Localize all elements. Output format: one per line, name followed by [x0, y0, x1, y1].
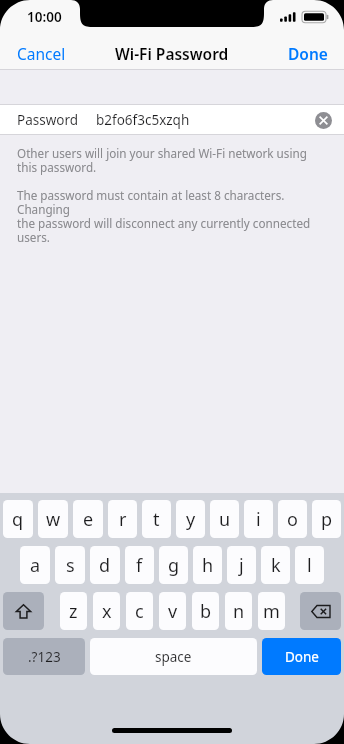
- staticText: e: [83, 507, 94, 532]
- staticText: c: [135, 599, 144, 624]
- staticText: j: [239, 553, 244, 578]
- staticText: space: [155, 648, 192, 666]
- staticText: Done: [285, 648, 319, 666]
- staticText: m: [263, 599, 280, 624]
- staticText: g: [168, 553, 180, 578]
- button[interactable]: Cancel: [0, 36, 78, 70]
- button[interactable]: a: [20, 546, 50, 584]
- button[interactable]: Backspace: [300, 592, 341, 630]
- button[interactable]: Done: [262, 638, 341, 675]
- button[interactable]: s: [55, 546, 85, 584]
- staticText: w: [46, 507, 61, 532]
- button[interactable]: u: [210, 500, 239, 538]
- button[interactable]: z: [60, 592, 87, 630]
- button[interactable]: c: [126, 592, 153, 630]
- staticText: u: [219, 507, 231, 532]
- staticText: p: [321, 507, 333, 532]
- staticText: Other users will join your shared Wi-Fi …: [17, 145, 307, 176]
- staticText: o: [287, 507, 298, 532]
- staticText: b: [200, 599, 212, 624]
- button[interactable]: d: [90, 546, 120, 584]
- button[interactable]: f: [125, 546, 154, 584]
- staticText: z: [69, 599, 78, 624]
- button[interactable]: y: [176, 500, 205, 538]
- staticText: 10:00: [27, 8, 62, 26]
- button[interactable]: n: [225, 592, 252, 630]
- button[interactable]: k: [261, 546, 290, 584]
- staticText: s: [66, 553, 75, 578]
- button[interactable]: v: [159, 592, 186, 630]
- staticText: q: [12, 507, 24, 532]
- staticText: n: [233, 599, 245, 624]
- staticText: k: [271, 553, 281, 578]
- button[interactable]: b: [192, 592, 219, 630]
- button[interactable]: .?123: [3, 638, 85, 675]
- staticText: f: [136, 553, 143, 578]
- staticText: Done: [288, 43, 328, 64]
- button[interactable]: Clear text: [312, 109, 334, 131]
- button[interactable]: x: [93, 592, 120, 630]
- button[interactable]: Password: [0, 104, 344, 135]
- staticText: .?123: [28, 648, 61, 666]
- button[interactable]: l: [295, 546, 324, 584]
- staticText: t: [153, 507, 160, 532]
- button[interactable]: q: [3, 500, 33, 538]
- staticText: a: [30, 553, 41, 578]
- staticText: r: [119, 507, 127, 532]
- button[interactable]: h: [193, 546, 222, 584]
- staticText: l: [307, 553, 312, 578]
- button[interactable]: t: [142, 500, 171, 538]
- staticText: Wi-Fi Password: [115, 43, 229, 64]
- staticText: b2fo6f3c5xzqh: [96, 111, 190, 129]
- staticText: d: [99, 553, 111, 578]
- button[interactable]: o: [278, 500, 307, 538]
- staticText: h: [202, 553, 214, 578]
- staticText: y: [186, 507, 196, 532]
- button[interactable]: m: [258, 592, 285, 630]
- button[interactable]: Done: [276, 36, 344, 70]
- staticText: i: [256, 507, 261, 532]
- staticText: x: [102, 599, 112, 624]
- staticText: Password: [17, 111, 79, 129]
- button[interactable]: g: [159, 546, 188, 584]
- button[interactable]: p: [312, 500, 341, 538]
- staticText: v: [168, 599, 178, 624]
- button[interactable]: r: [108, 500, 137, 538]
- button[interactable]: space: [90, 638, 257, 675]
- button[interactable]: Shift: [3, 592, 44, 630]
- button[interactable]: i: [244, 500, 273, 538]
- staticText: The password must contain at least 8 cha…: [17, 187, 334, 246]
- button[interactable]: w: [38, 500, 68, 538]
- staticText: Cancel: [17, 43, 66, 64]
- button[interactable]: e: [73, 500, 103, 538]
- button[interactable]: j: [227, 546, 256, 584]
